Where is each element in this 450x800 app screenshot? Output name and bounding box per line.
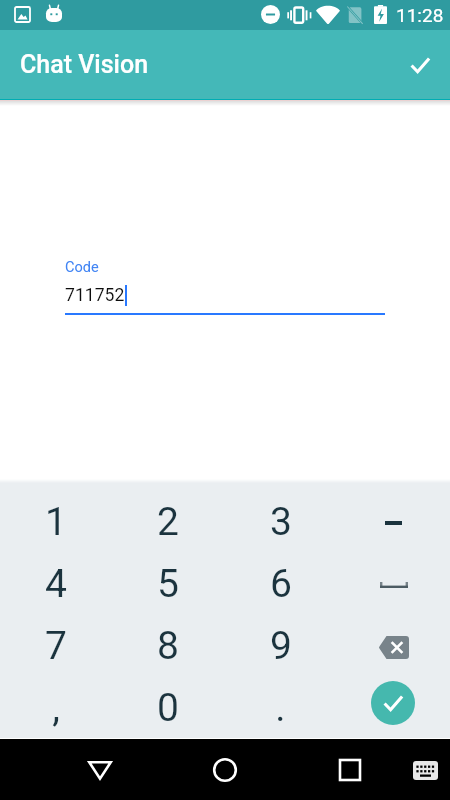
button[interactable]: 8 xyxy=(112,615,224,677)
button[interactable]: Keyboard xyxy=(405,750,445,790)
staticText: 7 xyxy=(45,623,67,669)
button[interactable]: Backspace xyxy=(337,615,450,677)
button[interactable]: 0 xyxy=(112,677,224,739)
button[interactable]: 3 xyxy=(224,491,337,553)
staticText: 8 xyxy=(157,623,179,669)
staticText: , xyxy=(52,685,60,731)
staticText: 2 xyxy=(157,499,179,545)
button[interactable]: , xyxy=(0,677,112,739)
button[interactable]: 5 xyxy=(112,553,224,615)
button[interactable]: . xyxy=(224,677,337,739)
staticText: Chat Vision xyxy=(20,50,149,79)
button[interactable]: 2 xyxy=(112,491,224,553)
staticText: 9 xyxy=(270,623,292,669)
staticText: 1 xyxy=(45,499,67,545)
button[interactable]: 7 xyxy=(0,615,112,677)
button[interactable]: Confirm xyxy=(400,45,440,85)
staticText: 5 xyxy=(157,561,179,607)
button[interactable]: 6 xyxy=(224,553,337,615)
staticText: 6 xyxy=(270,561,292,607)
staticText: 3 xyxy=(270,499,292,545)
button[interactable]: Home xyxy=(201,746,249,794)
button[interactable]: 9 xyxy=(224,615,337,677)
staticText: 711752 xyxy=(65,285,125,306)
button[interactable]: Recents xyxy=(326,746,374,794)
button[interactable]: 1 xyxy=(0,491,112,553)
staticText: . xyxy=(275,685,286,731)
button[interactable]: Minus xyxy=(337,491,450,553)
button[interactable]: Back xyxy=(76,746,124,794)
button[interactable]: Done xyxy=(337,677,450,739)
button[interactable]: Space xyxy=(337,553,450,615)
staticText: 4 xyxy=(45,561,67,607)
button[interactable]: 4 xyxy=(0,553,112,615)
staticText: 0 xyxy=(157,685,179,731)
staticText: Code xyxy=(65,258,99,275)
staticText: 11:28 xyxy=(396,4,444,26)
